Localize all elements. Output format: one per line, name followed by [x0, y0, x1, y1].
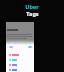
staticText: Tags	[26, 10, 39, 17]
button[interactable]	[6, 67, 34, 72]
button[interactable]	[6, 57, 34, 62]
button[interactable]	[6, 52, 34, 57]
staticText: Uber	[25, 3, 39, 10]
button[interactable]	[6, 62, 34, 67]
